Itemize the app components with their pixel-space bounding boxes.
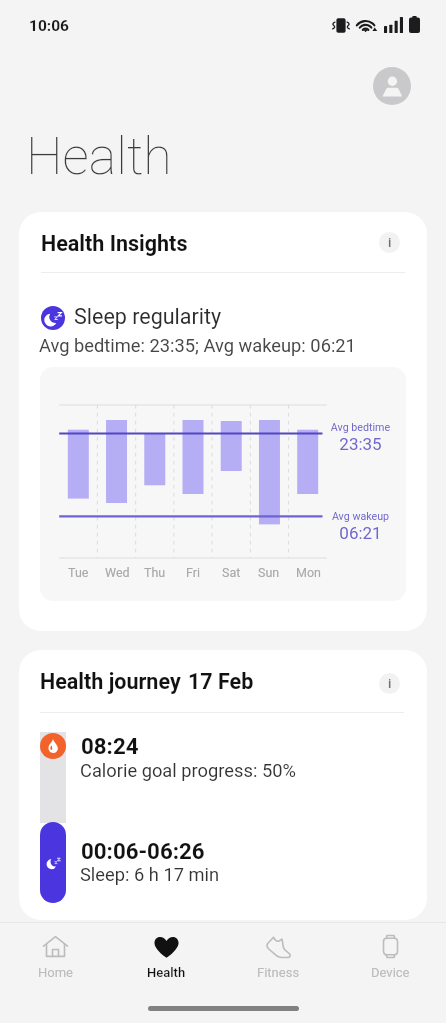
staticText: 00:06-06:26 (81, 838, 205, 864)
staticText: Health (26, 126, 172, 187)
staticText: Fri (186, 565, 201, 580)
button[interactable]: Fitness (222, 923, 334, 989)
staticText: Tue (68, 565, 89, 580)
staticText: 17 Feb (188, 669, 254, 694)
button[interactable]: Info (379, 232, 400, 253)
button[interactable]: Info (379, 673, 400, 694)
staticText: 23:35 (320, 434, 401, 454)
staticText: 10:06 (29, 17, 69, 35)
button[interactable]: Health Insights (19, 212, 427, 631)
button[interactable]: Health journey (19, 650, 427, 920)
staticText: 08:24 (81, 733, 139, 759)
staticText: Sleep regularity (74, 304, 222, 329)
staticText: Health Insights (41, 231, 188, 256)
staticText: Calorie goal progress: 50% (80, 760, 296, 781)
button[interactable]: Profile (373, 67, 411, 105)
staticText: Health (147, 965, 186, 980)
staticText: Health journey (40, 669, 181, 694)
staticText: Wed (105, 565, 130, 580)
button[interactable]: Device (334, 923, 446, 989)
staticText: Avg wakeup (320, 510, 401, 523)
staticText: i (388, 676, 392, 691)
button[interactable]: Health (111, 923, 222, 989)
staticText: Avg bedtime: 23:35; Avg wakeup: 06:21 (39, 335, 356, 356)
staticText: Avg bedtime (320, 421, 401, 434)
staticText: Home (38, 965, 73, 980)
staticText: Mon (296, 565, 321, 580)
button[interactable]: Home (0, 923, 111, 989)
staticText: Thu (144, 565, 166, 580)
staticText: 06:21 (320, 523, 401, 543)
staticText: i (388, 235, 392, 250)
staticText: Device (371, 965, 410, 980)
staticText: Sun (258, 565, 280, 580)
staticText: Fitness (257, 965, 300, 980)
staticText: Sleep: 6 h 17 min (80, 864, 220, 885)
staticText: Sat (222, 565, 241, 580)
